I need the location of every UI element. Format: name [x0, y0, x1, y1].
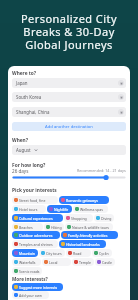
staticText: August [16, 147, 31, 153]
button[interactable]: Temples [72, 258, 94, 266]
staticText: Where to? [12, 70, 37, 77]
button[interactable]: Historical landmarks [59, 240, 106, 248]
button[interactable]: Shanghai, China [12, 107, 126, 117]
button[interactable]: Add another destination [12, 122, 126, 131]
staticText: Romantic getaways [66, 198, 98, 203]
staticText: When? [12, 137, 29, 144]
button[interactable]: Japan [12, 78, 126, 88]
staticText: Castles [102, 260, 113, 265]
button[interactable]: Street food, fine dining [12, 196, 58, 204]
staticText: Nature & wildlife tours [72, 225, 110, 230]
staticText: Shanghai, China [16, 109, 50, 115]
staticText: Diving [101, 216, 112, 221]
staticText: Waterfalls [19, 260, 36, 265]
staticText: Japan [16, 80, 28, 86]
button[interactable]: South Korea [12, 92, 126, 102]
staticText: Mountains [19, 251, 36, 256]
staticText: Local markets [49, 260, 69, 265]
button[interactable]: Remove destination [118, 109, 124, 115]
staticText: City tours [46, 251, 62, 256]
button[interactable]: Nature & wildlife tours [65, 223, 113, 231]
button[interactable]: Add your own [12, 291, 49, 299]
staticText: Pick your interests [12, 187, 57, 194]
button[interactable]: Hotel tours [12, 205, 46, 213]
staticText: Add another destination [45, 124, 93, 130]
staticText: Temples [79, 260, 92, 265]
button[interactable]: Beaches [12, 223, 43, 231]
staticText: Cultural experiences [19, 216, 53, 221]
button[interactable]: Scenic roads [12, 267, 42, 275]
button[interactable]: Temples and shrines [12, 240, 58, 248]
staticText: Road trips [73, 251, 89, 256]
staticText: 26 days [12, 168, 29, 174]
button[interactable]: Waterfalls [12, 258, 41, 266]
staticText: South Korea [16, 94, 42, 100]
staticText: Hotel tours [19, 207, 38, 212]
staticText: Wellness spas [80, 207, 103, 212]
button[interactable]: Road trips [66, 249, 91, 257]
button[interactable]: Outdoor adventures [12, 231, 60, 239]
staticText: Personalized City Breaks & 30-Day Global… [4, 11, 134, 53]
staticText: For how long? [12, 162, 46, 169]
staticText: Cycling [99, 251, 110, 256]
button[interactable]: Wellness spas [73, 205, 108, 213]
staticText: Beaches [19, 225, 33, 230]
button[interactable]: Nightlife [47, 205, 72, 213]
button[interactable] [12, 175, 126, 180]
button[interactable]: Mountains [12, 249, 38, 257]
staticText: Temples and shrines [19, 242, 53, 247]
staticText: Suggest more interests [19, 285, 58, 290]
staticText: Hiking [51, 225, 62, 230]
staticText: Family-friendly activities [68, 233, 108, 238]
button[interactable]: Family-friendly activities [61, 231, 118, 239]
button[interactable]: Remove destination [118, 80, 124, 86]
staticText: Add your own [19, 293, 42, 298]
staticText: Historical landmarks [66, 242, 100, 247]
staticText: Outdoor adventures [19, 233, 53, 238]
button[interactable]: Romantic getaways [59, 196, 109, 204]
button[interactable]: Suggest more interests [12, 283, 63, 291]
staticText: More interests? [12, 276, 48, 282]
staticText: Shopping [71, 216, 87, 221]
button[interactable]: City tours [39, 249, 65, 257]
button[interactable]: Castles [95, 258, 115, 266]
staticText: Street food, fine dining [19, 198, 56, 203]
button[interactable]: Diving [94, 214, 114, 222]
button[interactable]: Shopping [64, 214, 93, 222]
button[interactable]: Hiking [44, 223, 64, 231]
button[interactable]: August [12, 145, 126, 155]
button[interactable]: Local markets [42, 258, 71, 266]
staticText: Scenic roads [19, 269, 40, 274]
staticText: Recommended: 14 - 21 days [77, 168, 126, 173]
staticText: Nightlife [54, 207, 69, 212]
button[interactable]: Remove destination [118, 94, 124, 100]
button[interactable]: Cultural experiences [12, 214, 63, 222]
button[interactable]: Cycling [92, 249, 112, 257]
